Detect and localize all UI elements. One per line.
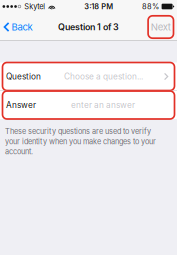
staticText: Next (151, 21, 171, 33)
staticText: Skytel (24, 2, 45, 11)
staticText: Question 1 of 3 (58, 22, 119, 32)
button[interactable]: Next (148, 16, 173, 38)
staticText: Choose a question... (64, 71, 143, 81)
staticText: enter an answer (71, 100, 135, 110)
staticText: 88% (142, 2, 159, 11)
button[interactable]: Back (0, 15, 36, 38)
button[interactable]: Question (0, 62, 177, 90)
staticText: Back (11, 21, 32, 33)
staticText: These security questions are used to ver… (5, 127, 156, 156)
button[interactable]: Answer (0, 91, 177, 119)
staticText: Answer (6, 100, 36, 110)
staticText: 3:18 PM (84, 2, 113, 11)
staticText: Question (6, 71, 41, 81)
